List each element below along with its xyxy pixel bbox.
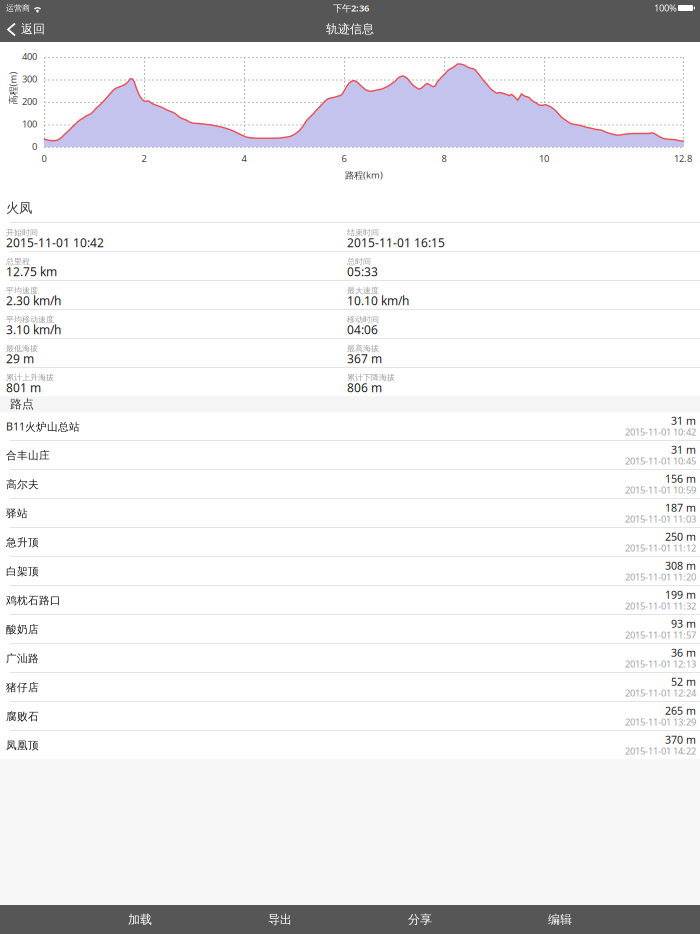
staticText: 返回 [21,22,45,36]
staticText: 370 m [665,732,696,747]
staticText: 总时间 [347,257,371,266]
staticText: 下午2:36 [333,2,369,14]
button[interactable]: 猪仔店 [0,673,700,702]
staticText: 2015-11-01 16:15 [347,234,445,250]
staticText: 200 [22,95,37,108]
staticText: 轨迹信息 [326,22,374,36]
staticText: 52 m [671,674,696,689]
staticText: 10 [539,152,549,165]
staticText: 100 [22,118,37,130]
staticText: 2015-11-01 10:42 [6,234,104,250]
staticText: 2015-11-01 11:57 [625,629,696,641]
staticText: 36 m [671,645,696,660]
staticText: 2015-11-01 10:59 [625,484,696,496]
staticText: 6 [341,152,346,165]
staticText: 凤凰顶 [6,739,39,752]
staticText: 2.30 km/h [6,292,61,308]
staticText: 4 [241,152,246,165]
staticText: 酸奶店 [6,623,39,636]
staticText: 31 m [671,413,696,428]
staticText: 2015-11-01 14:22 [625,745,696,757]
staticText: 驿站 [6,507,28,520]
button[interactable]: 白架顶 [0,557,700,586]
button[interactable]: 急升顶 [0,528,700,557]
staticText: 31 m [671,442,696,457]
staticText: 开始时间 [6,228,38,237]
staticText: 3.10 km/h [6,321,61,337]
staticText: 300 [22,73,37,85]
staticText: 2015-11-01 11:03 [625,513,696,525]
staticText: 156 m [665,471,696,486]
staticText: 累计上升海拔 [6,373,54,382]
staticText: 广汕路 [6,652,39,665]
staticText: 编辑 [548,912,572,927]
staticText: 2015-11-01 12:13 [625,658,696,670]
staticText: 05:33 [347,263,378,279]
staticText: 结束时间 [347,228,379,237]
button[interactable]: 腐败石 [0,702,700,731]
staticText: 2015-11-01 11:20 [625,571,696,583]
button[interactable]: 高尔夫 [0,470,700,499]
staticText: 白架顶 [6,565,39,578]
staticText: 0 [32,140,37,153]
staticText: 路点 [10,397,34,411]
staticText: 高尔夫 [6,478,39,491]
staticText: 鸡枕石路口 [6,594,61,607]
staticText: 10.10 km/h [347,292,409,308]
staticText: 平均速度 [6,286,38,295]
staticText: 12.8 [674,152,692,165]
staticText: 806 m [347,379,382,395]
staticText: 04:06 [347,321,378,337]
staticText: 分享 [408,912,432,927]
staticText: 801 m [6,379,41,395]
button[interactable]: 编辑 [500,905,620,934]
staticText: 路程(km) [345,169,383,181]
staticText: 合丰山庄 [6,449,50,462]
staticText: 最高海拔 [347,344,379,353]
staticText: 2015-11-01 10:45 [625,455,696,467]
staticText: 367 m [347,350,382,366]
button[interactable]: 鸡枕石路口 [0,586,700,615]
staticText: 最大速度 [347,286,379,295]
staticText: 高程(m) [0,82,29,94]
button[interactable]: B11火炉山总站 [0,412,700,441]
staticText: 265 m [665,703,696,718]
button[interactable]: 返回 [0,18,60,42]
button[interactable]: 导出 [220,905,340,934]
staticText: 猪仔店 [6,681,39,694]
staticText: 400 [22,50,37,63]
staticText: 250 m [665,529,696,544]
staticText: 12.75 km [6,263,57,279]
staticText: 总里程 [6,257,30,266]
staticText: 2015-11-01 13:29 [625,716,696,728]
staticText: 187 m [665,500,696,515]
button[interactable]: 凤凰顶 [0,731,700,759]
staticText: 2015-11-01 11:32 [625,600,696,612]
staticText: B11火炉山总站 [6,419,80,434]
staticText: 平均移动速度 [6,315,54,324]
staticText: 199 m [665,587,696,602]
staticText: 93 m [671,616,696,631]
staticText: 2015-11-01 10:42 [625,426,696,438]
staticText: 累计下降海拔 [347,373,395,382]
button[interactable]: 加载 [80,905,200,934]
staticText: 100% [654,2,677,14]
button[interactable]: 驿站 [0,499,700,528]
staticText: 0 [41,152,46,165]
button[interactable]: 酸奶店 [0,615,700,644]
staticText: 2015-11-01 11:12 [625,542,696,554]
staticText: 加载 [128,912,152,927]
staticText: 移动时间 [347,315,379,324]
button[interactable]: 广汕路 [0,644,700,673]
staticText: 导出 [268,912,292,927]
staticText: 2015-11-01 12:24 [625,687,696,699]
staticText: 急升顶 [6,536,39,549]
staticText: 运营商 [6,3,30,13]
staticText: 8 [441,152,446,165]
staticText: 2 [141,152,146,165]
button[interactable]: 分享 [360,905,480,934]
staticText: 最低海拔 [6,344,38,353]
staticText: 火凤 [6,200,32,216]
button[interactable]: 合丰山庄 [0,441,700,470]
staticText: 308 m [665,558,696,573]
